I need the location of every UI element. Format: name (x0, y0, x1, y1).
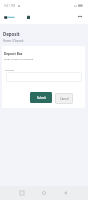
staticText: Cancel (60, 97, 69, 101)
button[interactable]: Cancel (55, 93, 73, 104)
staticText: Deposit Box (4, 52, 23, 56)
button[interactable]: App logo (4, 12, 15, 21)
staticText: 9:41 PM (4, 4, 16, 8)
button[interactable] (6, 72, 82, 82)
staticText: Deposit (3, 31, 20, 37)
staticText: Submit (37, 96, 46, 100)
button[interactable]: Account (25, 13, 32, 20)
button[interactable]: Submit (30, 92, 52, 103)
button[interactable]: Home (38, 186, 50, 200)
button[interactable]: Recent apps (16, 186, 28, 200)
button[interactable]: More options (76, 13, 83, 20)
button[interactable]: Back (59, 186, 71, 200)
staticText: Home / Deposit (3, 39, 24, 43)
staticText: Amount (5, 68, 15, 71)
staticText: Enter Amount to continue (4, 57, 34, 60)
